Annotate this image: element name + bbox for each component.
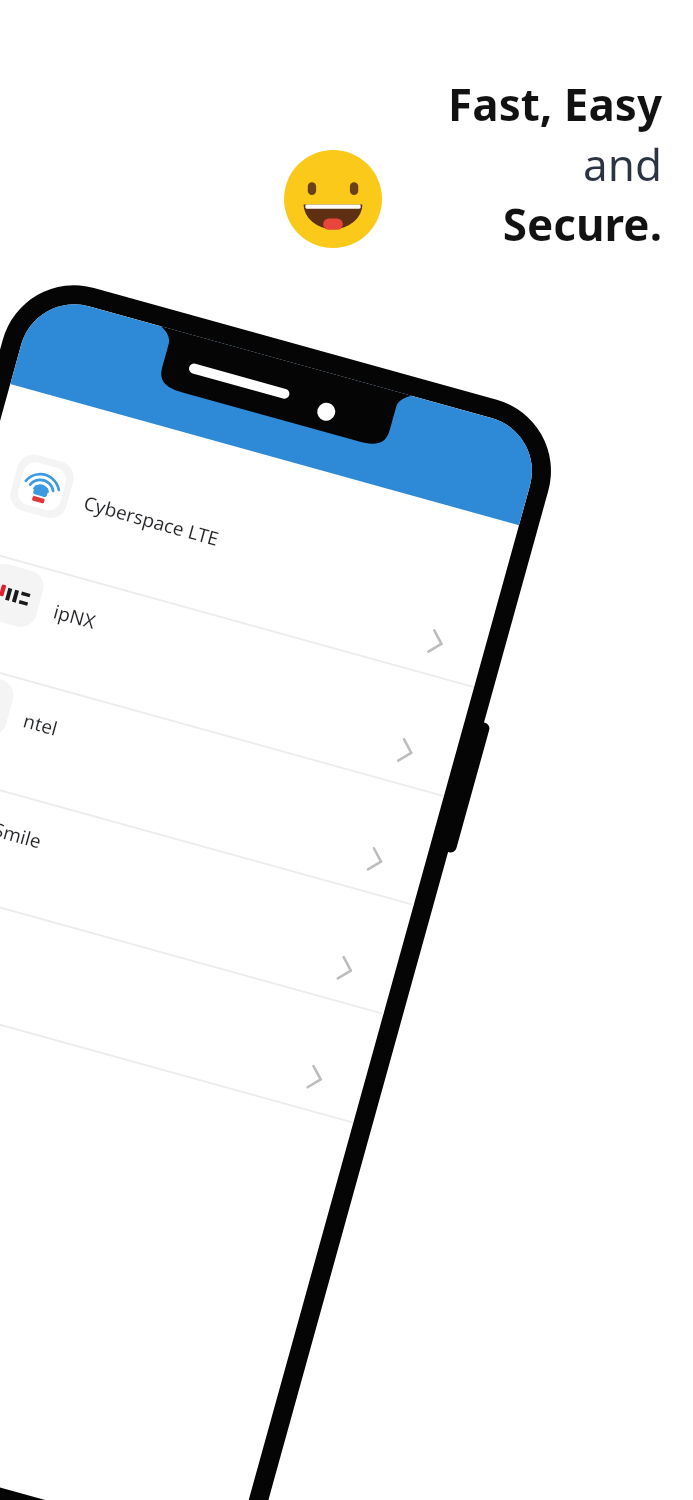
other: ntel logo	[0, 677, 9, 731]
button[interactable]: Cyberspace LTE logo	[0, 432, 523, 692]
button[interactable]: smile	[0, 759, 432, 1019]
button[interactable]: ipNX logo	[0, 541, 492, 801]
staticText: Fast, Easy	[448, 74, 662, 134]
staticText: and	[583, 134, 662, 194]
staticText: ntel	[20, 707, 61, 742]
button[interactable]: ntel logo	[0, 650, 462, 910]
staticText: ipNX	[51, 599, 99, 635]
other: Cyberspace LTE logo	[15, 459, 69, 513]
staticText: Cyberspace LTE	[81, 490, 222, 552]
other: ipNX logo	[0, 568, 39, 622]
staticText: Smile	[0, 816, 44, 854]
staticText: Secure.	[502, 194, 662, 254]
